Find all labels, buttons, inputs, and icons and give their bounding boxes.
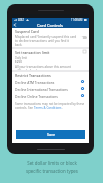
staticText: AT&T	[18, 18, 25, 22]
staticText: .	[62, 106, 63, 110]
staticText: Suspend Card	[15, 29, 39, 34]
staticText: Card Controls	[37, 23, 64, 28]
button[interactable]: Save	[16, 130, 85, 139]
button[interactable]: Decline Online Transactions	[12, 92, 89, 99]
staticText: Misplaced card? Instantly suspend this c…	[15, 35, 77, 47]
staticText: Set dollar limits or block	[27, 160, 77, 166]
button[interactable]: Terms & Conditions	[34, 106, 62, 110]
button[interactable]: Back	[12, 22, 18, 28]
button[interactable]: Decline International Transactions	[12, 85, 89, 92]
button[interactable]: Suspend card toggle	[79, 35, 87, 40]
staticText: Decline International Transactions	[15, 87, 81, 91]
staticText: Save	[47, 132, 55, 137]
button[interactable]: Edit limit	[83, 50, 86, 53]
staticText: All your transactions above this amount …	[15, 65, 72, 70]
staticText: Set transaction limit	[15, 50, 83, 55]
staticText: specific transaction types	[26, 168, 78, 174]
staticText: Decline ATM Transactions	[15, 80, 81, 84]
staticText: Decline Online Transactions	[15, 94, 81, 98]
staticText: Restrict Transactions	[15, 73, 51, 78]
staticText: 11:08 AM	[71, 18, 83, 22]
staticText: $250	[15, 60, 22, 64]
staticText: Some transactions may not be impacted by…	[15, 102, 85, 106]
staticText: controls. See	[15, 106, 34, 110]
button[interactable]: Decline ATM Transactions	[12, 78, 89, 85]
staticText: Daily limit	[15, 56, 28, 60]
